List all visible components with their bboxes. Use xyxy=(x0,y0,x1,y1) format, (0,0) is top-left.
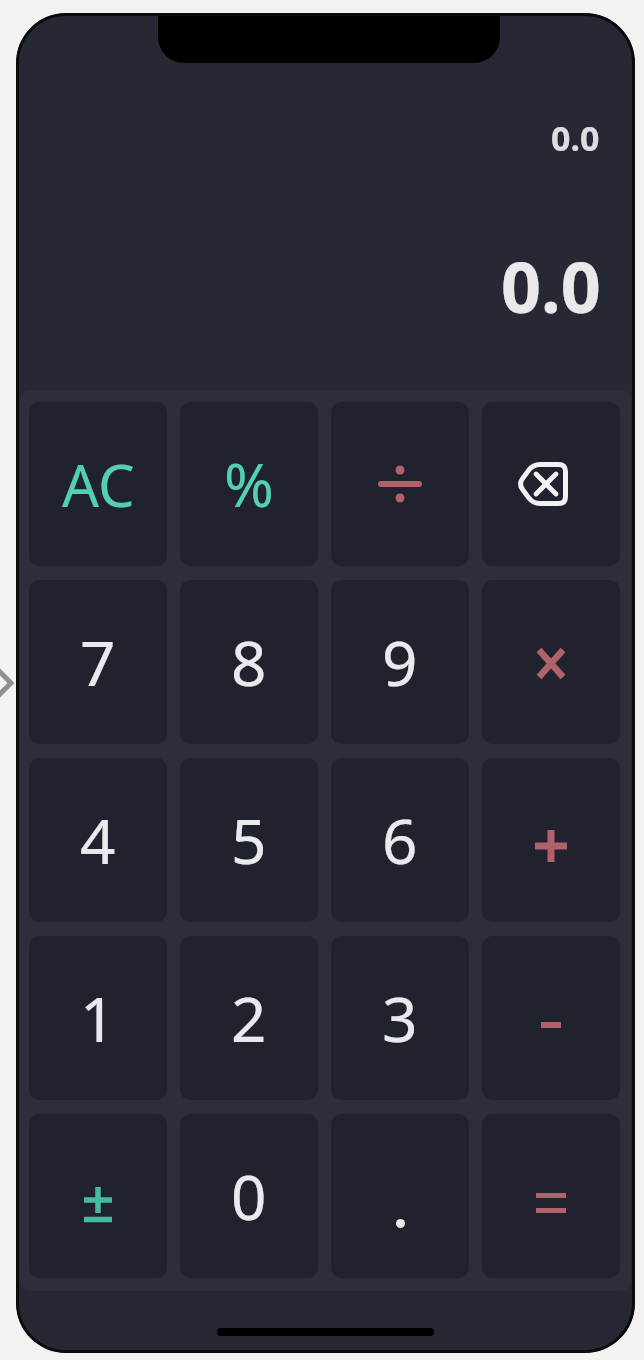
button[interactable] xyxy=(482,402,620,566)
staticText: 8 xyxy=(231,620,267,704)
button[interactable]: % xyxy=(180,402,318,566)
button[interactable] xyxy=(29,1114,167,1278)
button[interactable]: 6 xyxy=(331,758,469,922)
staticText: 1 xyxy=(80,976,116,1060)
button[interactable]: 3 xyxy=(331,936,469,1100)
staticText: % xyxy=(224,443,274,525)
button[interactable] xyxy=(331,1114,469,1278)
staticText: 4 xyxy=(80,798,116,882)
button[interactable] xyxy=(482,1114,620,1278)
button[interactable]: 0 xyxy=(180,1114,318,1278)
staticText: 0 xyxy=(231,1154,267,1238)
staticText: 5 xyxy=(231,798,267,882)
button[interactable] xyxy=(331,402,469,566)
button[interactable]: 2 xyxy=(180,936,318,1100)
button[interactable] xyxy=(482,936,620,1100)
staticText: 2 xyxy=(231,976,267,1060)
button[interactable]: 1 xyxy=(29,936,167,1100)
button[interactable]: 7 xyxy=(29,580,167,744)
button[interactable] xyxy=(482,580,620,744)
button[interactable]: AC xyxy=(29,402,167,566)
button[interactable]: 9 xyxy=(331,580,469,744)
staticText: 7 xyxy=(80,620,116,704)
button[interactable]: 8 xyxy=(180,580,318,744)
staticText: 0.0 xyxy=(501,238,601,333)
button[interactable]: 5 xyxy=(180,758,318,922)
button[interactable] xyxy=(482,758,620,922)
staticText: 6 xyxy=(382,798,418,882)
button[interactable]: 4 xyxy=(29,758,167,922)
staticText: 9 xyxy=(382,620,418,704)
staticText: 3 xyxy=(382,976,418,1060)
staticText: AC xyxy=(62,445,135,524)
staticText: 0.0 xyxy=(551,115,600,161)
